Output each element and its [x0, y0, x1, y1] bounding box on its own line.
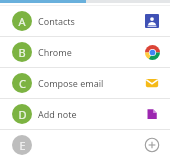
- button[interactable]: Add item: [144, 137, 160, 153]
- button[interactable]: Open Contacts: [145, 14, 159, 28]
- button[interactable]: D: [0, 99, 170, 129]
- button[interactable]: Compose email: [145, 76, 159, 90]
- button[interactable]: C: [0, 68, 170, 98]
- button[interactable]: Add note: [145, 107, 159, 121]
- staticText: Compose email: [38, 77, 104, 89]
- staticText: Add note: [38, 108, 77, 120]
- staticText: E: [19, 138, 26, 153]
- staticText: A: [18, 14, 26, 29]
- staticText: B: [18, 45, 26, 60]
- staticText: Contacts: [38, 15, 75, 27]
- staticText: C: [19, 76, 26, 91]
- button[interactable]: A: [0, 6, 170, 36]
- button[interactable]: Open Chrome: [145, 45, 160, 60]
- staticText: Chrome: [38, 46, 72, 58]
- button[interactable]: B: [0, 37, 170, 67]
- staticText: D: [18, 107, 27, 122]
- button[interactable]: E: [0, 130, 170, 160]
